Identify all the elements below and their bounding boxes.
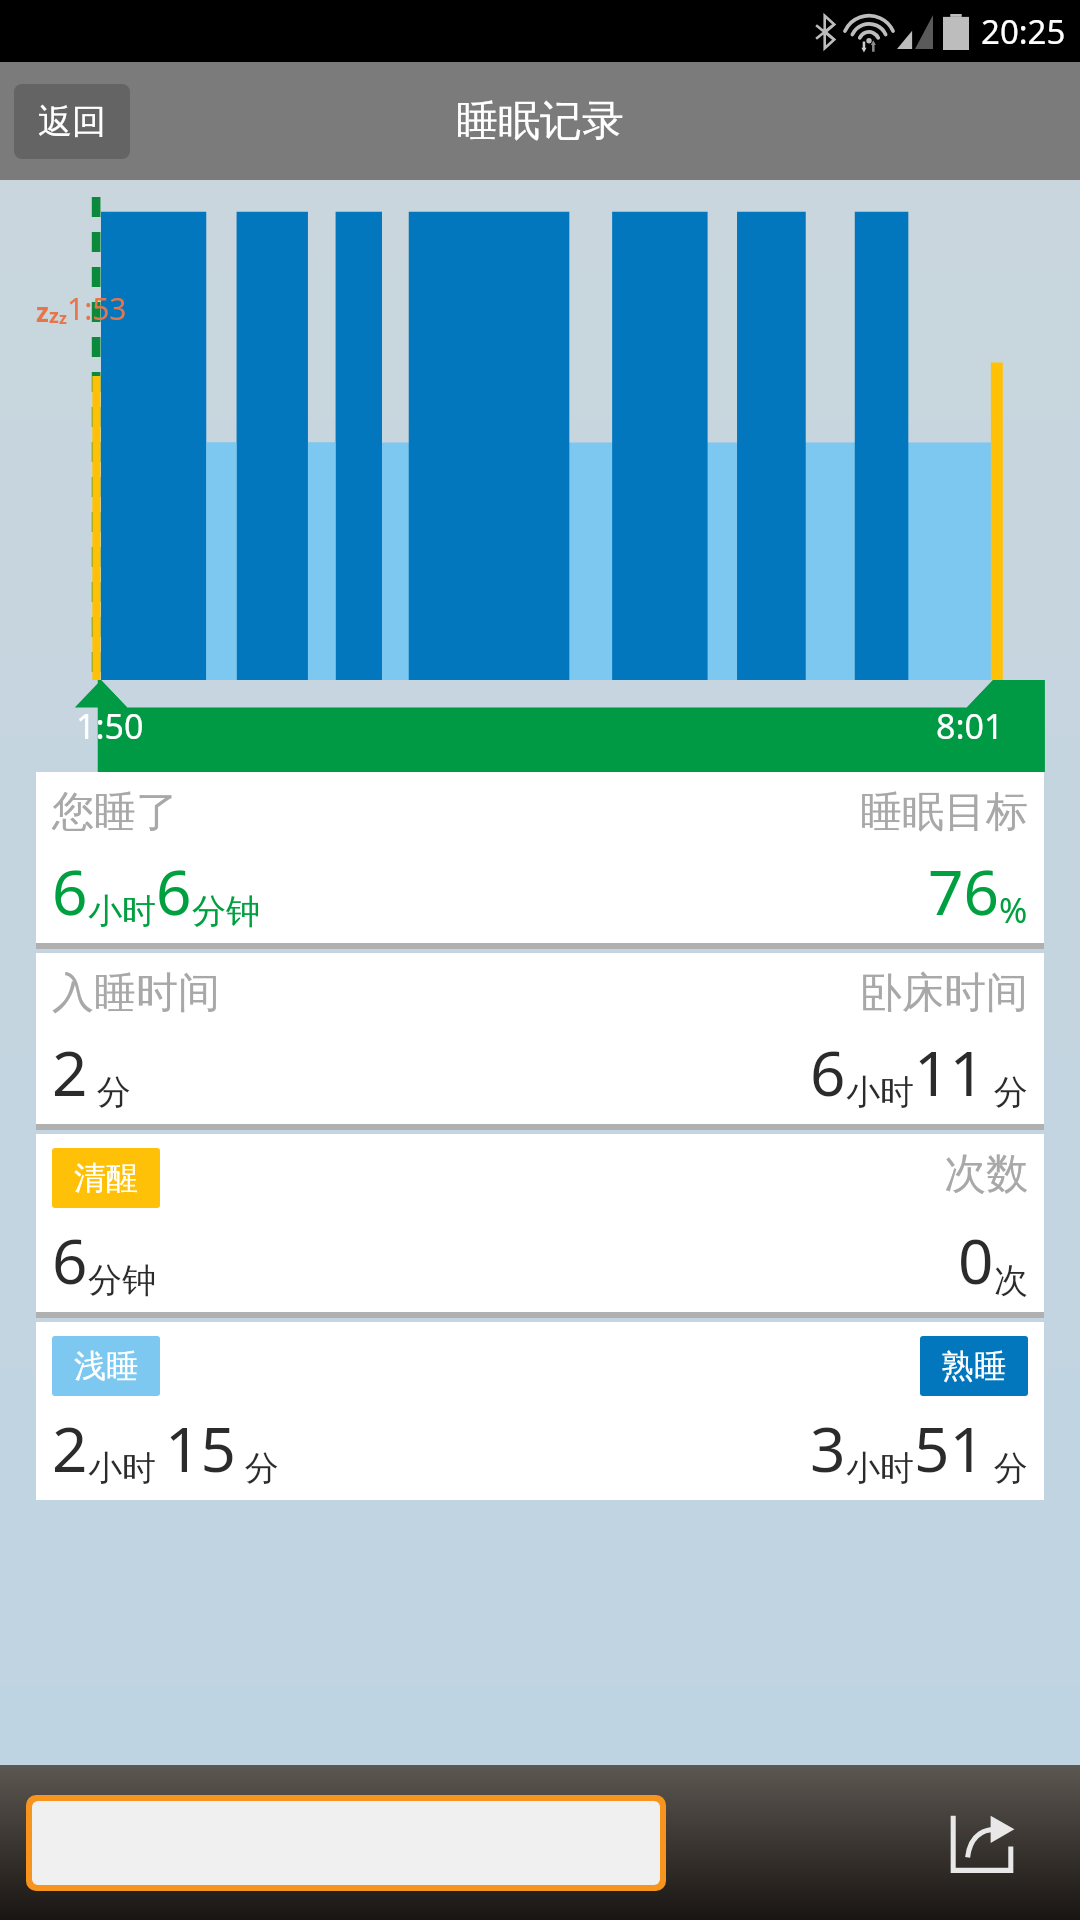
- staticText: 小时: [846, 1447, 914, 1490]
- staticText: 11: [914, 1030, 985, 1114]
- staticText: 小时: [88, 890, 156, 933]
- staticText: 入睡时间: [52, 967, 220, 1020]
- staticText: 您睡了: [52, 786, 178, 839]
- staticText: 小时: [846, 1071, 914, 1114]
- staticText: 分钟: [192, 890, 260, 933]
- staticText: 6: [810, 1030, 846, 1114]
- staticText: 15: [165, 1406, 236, 1490]
- staticText: 睡眠目标: [860, 786, 1028, 839]
- staticText: 分钟: [88, 1259, 156, 1302]
- button[interactable]: [32, 1801, 660, 1885]
- staticText: 6: [156, 849, 192, 933]
- button[interactable]: Share: [934, 1795, 1030, 1891]
- staticText: 2: [52, 1406, 88, 1490]
- staticText: 1:53: [67, 288, 127, 329]
- staticText: 睡眠记录: [456, 95, 624, 148]
- button[interactable]: 入睡时间: [36, 953, 1044, 1124]
- staticText: 分: [985, 1444, 1028, 1490]
- staticText: 8:01: [936, 703, 1004, 749]
- staticText: %: [999, 887, 1028, 933]
- staticText: 卧床时间: [860, 967, 1028, 1020]
- staticText: 51: [914, 1406, 985, 1490]
- staticText: 清醒: [74, 1158, 138, 1198]
- staticText: 76: [928, 849, 999, 933]
- staticText: 2: [52, 1030, 88, 1114]
- button[interactable]: 浅睡: [36, 1322, 1044, 1500]
- button[interactable]: 清醒: [36, 1134, 1044, 1312]
- staticText: z: [49, 302, 59, 329]
- staticText: 次数: [944, 1148, 1028, 1201]
- staticText: z: [59, 307, 67, 329]
- button[interactable]: 返回: [14, 84, 130, 159]
- staticText: 浅睡: [74, 1346, 138, 1386]
- staticText: 分: [88, 1068, 131, 1114]
- staticText: 分: [236, 1444, 279, 1490]
- staticText: 20:25: [981, 9, 1066, 54]
- button[interactable]: 您睡了: [36, 772, 1044, 943]
- staticText: 小时: [88, 1444, 165, 1490]
- staticText: 0: [958, 1218, 994, 1302]
- staticText: 6: [52, 849, 88, 933]
- staticText: 6: [52, 1218, 88, 1302]
- staticText: 返回: [38, 100, 106, 143]
- staticText: z: [36, 294, 49, 329]
- staticText: 3: [810, 1406, 846, 1490]
- staticText: 1:50: [76, 703, 144, 749]
- staticText: 分: [985, 1068, 1028, 1114]
- staticText: 熟睡: [942, 1346, 1006, 1386]
- staticText: 次: [994, 1259, 1028, 1302]
